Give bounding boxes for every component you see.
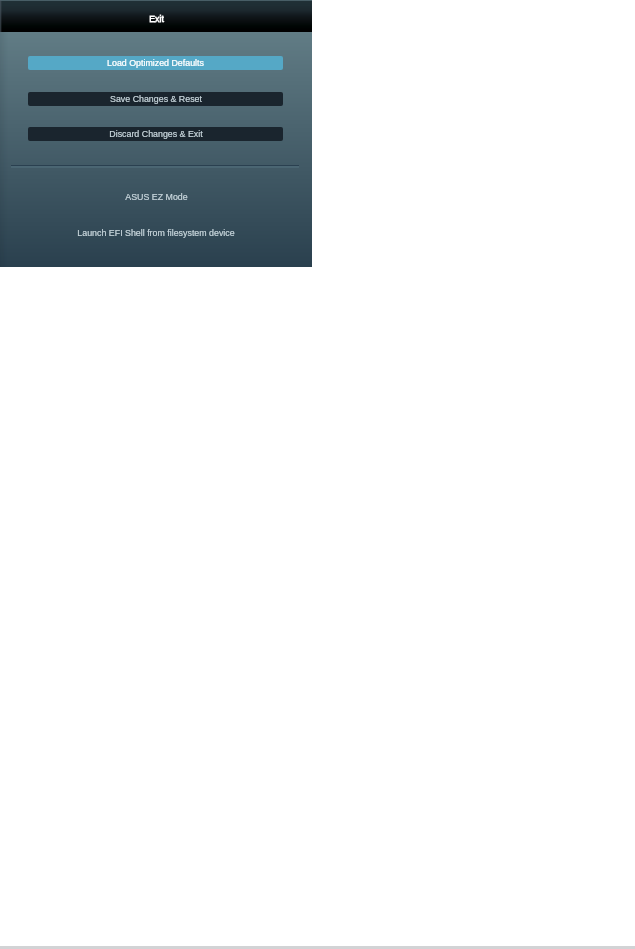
staticText: Exit bbox=[149, 14, 164, 24]
button[interactable]: Save Changes & Reset bbox=[28, 92, 283, 106]
staticText: Launch EFI Shell from filesystem device bbox=[77, 228, 235, 238]
button[interactable]: Launch EFI Shell from filesystem device bbox=[0, 226, 312, 240]
staticText: Discard Changes & Exit bbox=[109, 129, 203, 139]
staticText: Save Changes & Reset bbox=[110, 94, 202, 104]
staticText: ASUS EZ Mode bbox=[125, 192, 188, 202]
button[interactable]: Exit bbox=[0, 0, 312, 32]
button[interactable]: Discard Changes & Exit bbox=[28, 127, 283, 141]
staticText: Load Optimized Defaults bbox=[107, 58, 204, 68]
button[interactable]: Load Optimized Defaults bbox=[28, 56, 283, 70]
button[interactable]: ASUS EZ Mode bbox=[0, 190, 312, 204]
